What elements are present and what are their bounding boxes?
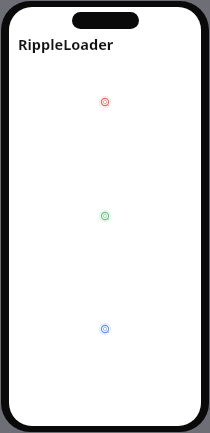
- staticText: RippleLoader: [18, 34, 114, 54]
- button[interactable]: Green ripple loader: [92, 203, 118, 229]
- button[interactable]: RippleLoader: [18, 34, 192, 54]
- button[interactable]: Red ripple loader: [92, 89, 118, 115]
- button[interactable]: Blue ripple loader: [92, 316, 118, 342]
